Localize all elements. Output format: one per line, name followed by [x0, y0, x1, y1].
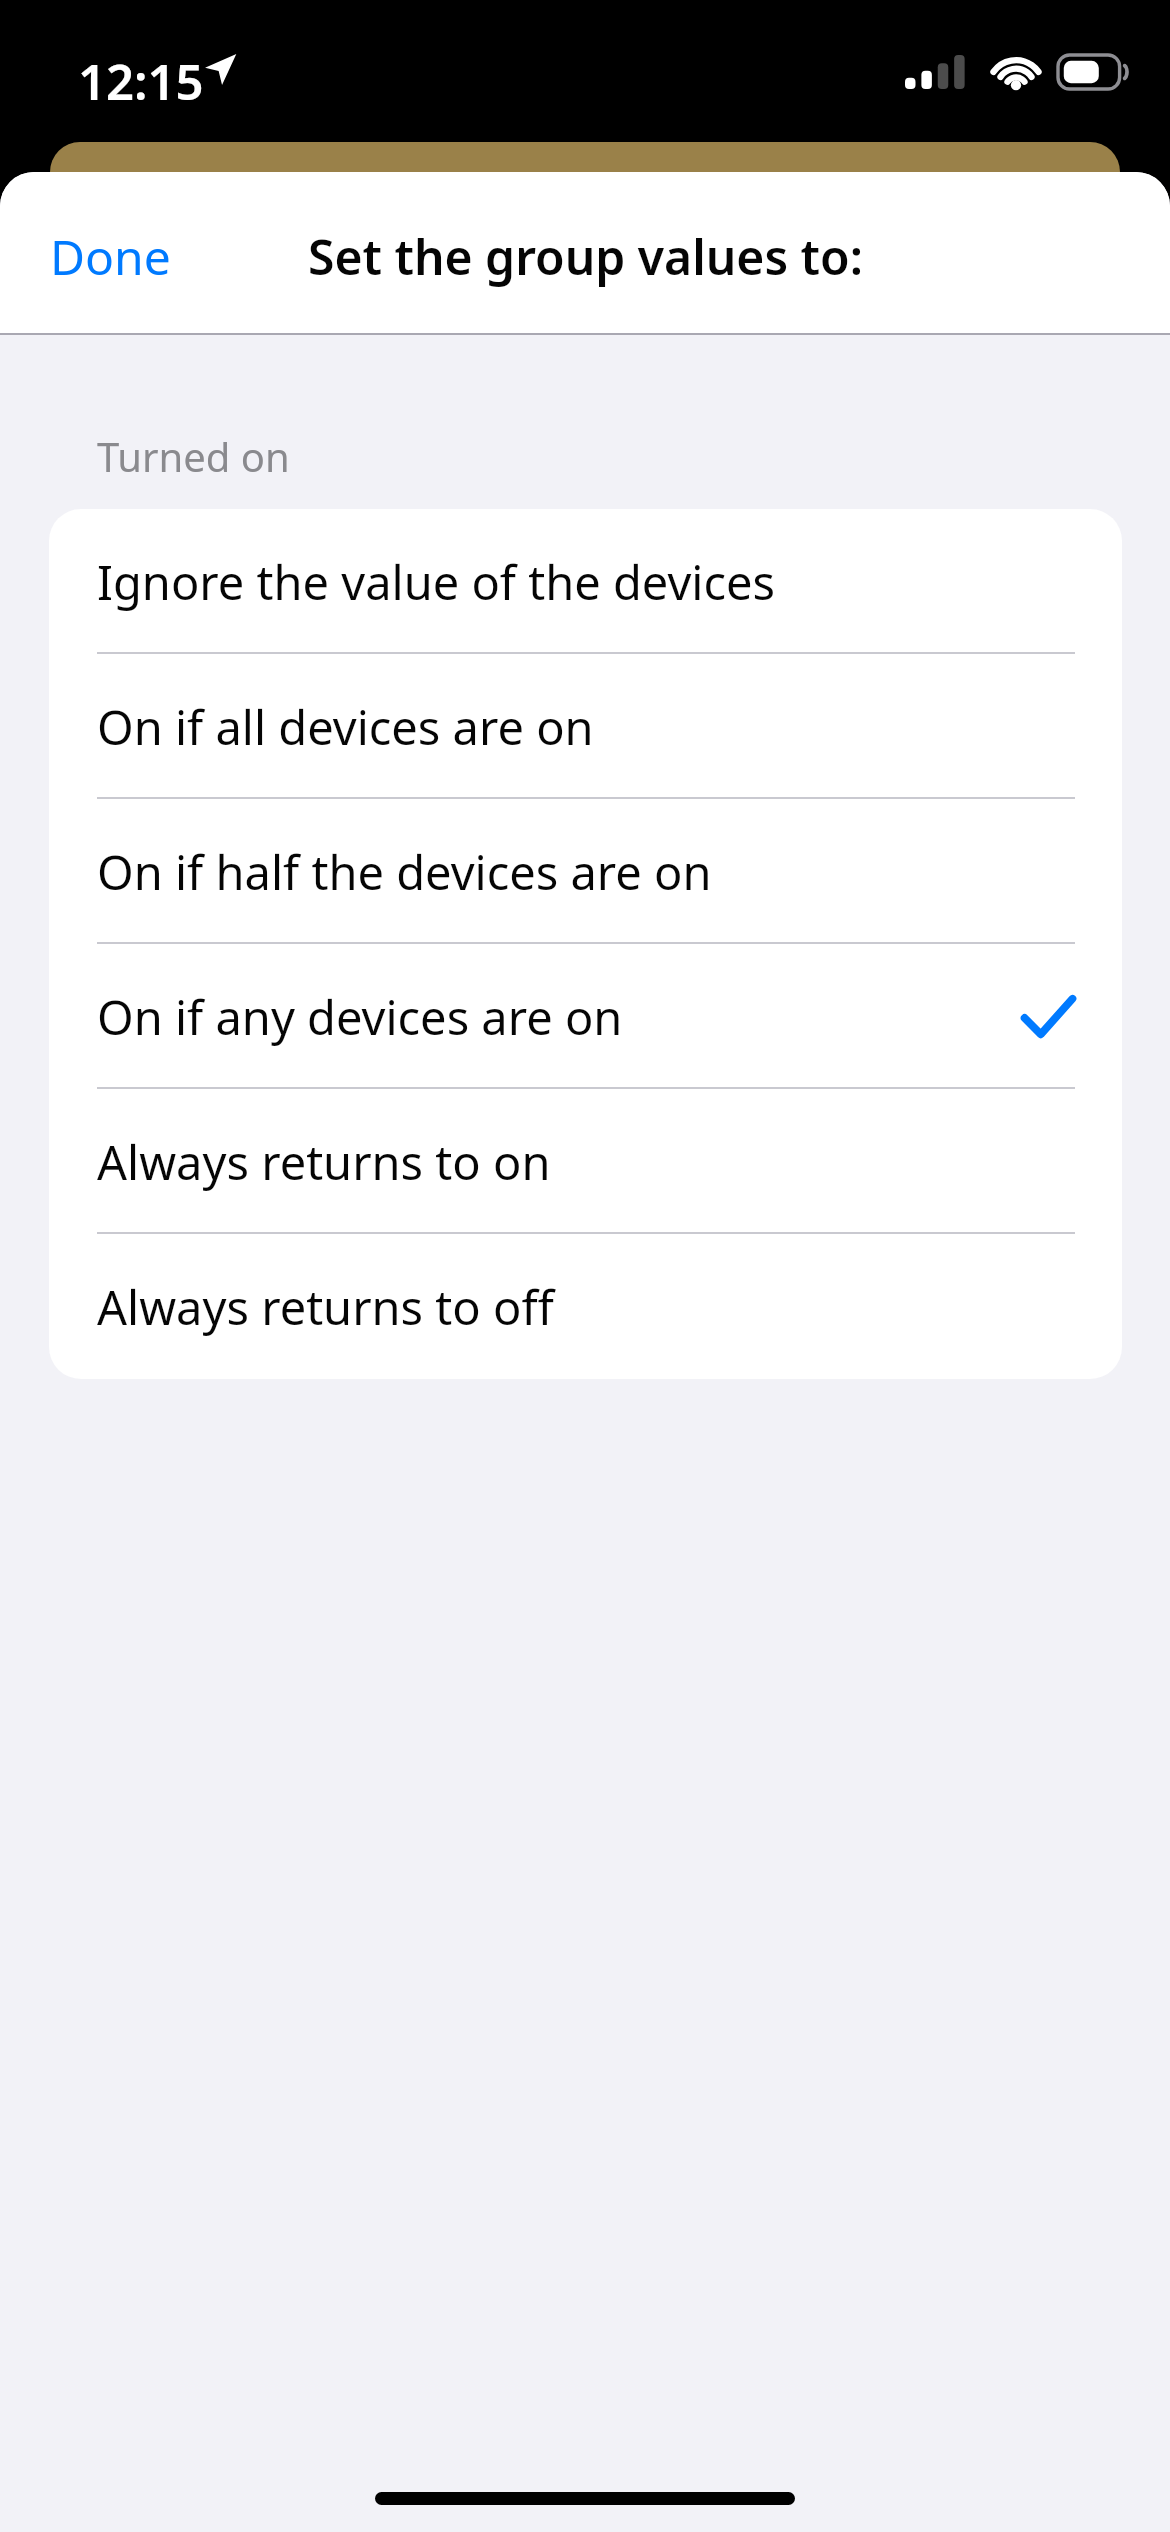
button[interactable]: Always returns to on	[49, 1089, 1122, 1234]
button[interactable]: On if half the devices are on	[49, 799, 1122, 944]
staticText: Set the group values to:	[308, 224, 863, 289]
other: Selected	[1022, 993, 1074, 1041]
staticText: Ignore the value of the devices	[97, 550, 1074, 614]
staticText: Always returns to off	[97, 1275, 1074, 1339]
staticText: Turned on	[97, 429, 290, 483]
staticText: On if half the devices are on	[97, 840, 1074, 904]
button[interactable]: Done	[30, 208, 191, 305]
button[interactable]: On if all devices are on	[49, 654, 1122, 799]
staticText: On if all devices are on	[97, 695, 1074, 759]
staticText: Done	[50, 224, 171, 289]
button[interactable]: Ignore the value of the devices	[49, 509, 1122, 654]
staticText: Always returns to on	[97, 1130, 1074, 1194]
staticText: On if any devices are on	[97, 985, 1022, 1049]
button[interactable]: Always returns to off	[49, 1234, 1122, 1379]
staticText: 12:15	[78, 48, 204, 115]
button[interactable]: On if any devices are on	[49, 944, 1122, 1089]
